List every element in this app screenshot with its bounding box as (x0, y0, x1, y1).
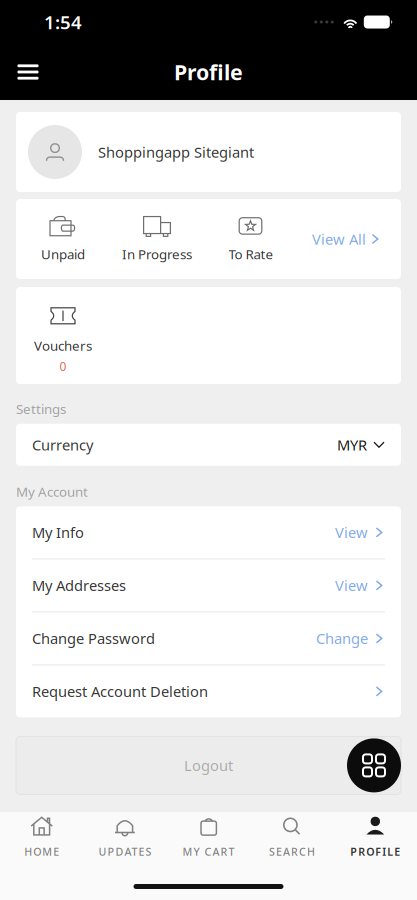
button[interactable]: To Rate (204, 199, 298, 279)
staticText: PROFILE (350, 844, 400, 859)
button[interactable]: SEARCH (250, 812, 334, 864)
button[interactable]: Unpaid (16, 199, 110, 279)
staticText: My Info (32, 523, 84, 542)
staticText: MY CART (182, 844, 234, 859)
staticText: Currency (32, 435, 93, 454)
button[interactable]: Request Account Deletion (16, 665, 401, 717)
staticText: MYR (337, 435, 367, 454)
staticText: Change Password (32, 629, 155, 648)
staticText: In Progress (122, 245, 192, 263)
button[interactable]: PROFILE (334, 812, 417, 864)
staticText: My Addresses (32, 576, 126, 595)
staticText: Profile (174, 58, 243, 86)
button[interactable]: My Addresses (16, 559, 401, 612)
staticText: Change (316, 629, 368, 648)
button[interactable]: Logout (16, 736, 401, 794)
button[interactable]: HOME (0, 812, 83, 864)
staticText: Logout (184, 756, 233, 775)
button[interactable]: In Progress (110, 199, 204, 279)
button[interactable]: Change Password (16, 612, 401, 665)
button[interactable]: Apps (347, 738, 401, 792)
staticText: View (335, 576, 368, 595)
button[interactable]: Currency (16, 424, 401, 466)
staticText: Unpaid (41, 245, 85, 263)
button[interactable]: Menu (6, 50, 50, 94)
button[interactable]: My Info (16, 506, 401, 559)
button[interactable]: MY CART (167, 812, 250, 864)
staticText: SEARCH (269, 844, 315, 859)
staticText: View All (312, 229, 366, 249)
staticText: To Rate (228, 245, 273, 263)
button[interactable]: UPDATES (83, 812, 167, 864)
staticText: View (335, 523, 368, 542)
button[interactable]: Vouchers (16, 287, 110, 384)
button[interactable]: View All (312, 199, 401, 279)
staticText: UPDATES (99, 844, 152, 859)
staticText: Vouchers (34, 337, 92, 354)
staticText: 1:54 (44, 10, 82, 34)
button[interactable]: Shoppingapp Sitegiant (16, 112, 401, 192)
staticText: Request Account Deletion (32, 682, 208, 701)
staticText: 0 (59, 358, 66, 374)
staticText: HOME (24, 844, 59, 859)
staticText: Settings (16, 400, 66, 418)
staticText: My Account (16, 483, 88, 500)
staticText: Shoppingapp Sitegiant (98, 142, 254, 162)
